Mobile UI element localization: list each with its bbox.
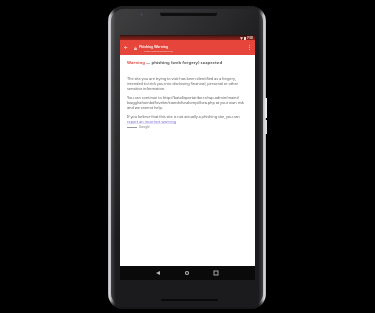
button[interactable]: Recent apps <box>211 268 221 278</box>
button[interactable]: Back <box>122 44 129 51</box>
button[interactable]: Back <box>153 268 163 278</box>
button[interactable]: Home <box>182 268 192 278</box>
staticText: If you believe that this site is not act… <box>127 114 240 119</box>
staticText: 7:10 <box>247 36 253 40</box>
staticText: The site you are trying to visit has bee… <box>127 76 251 91</box>
staticText: Google <box>139 125 150 129</box>
staticText: You can continue to http://batallaportar… <box>127 95 251 110</box>
button[interactable]: More options <box>245 43 254 52</box>
staticText: Phishing Warning <box>139 44 169 49</box>
staticText: — phishing (web forgery) suspected <box>145 59 223 65</box>
staticText: https://www.google.com <box>139 49 174 52</box>
staticText: Warning <box>127 59 145 65</box>
button[interactable]: report an incorrect warning <box>127 119 177 124</box>
